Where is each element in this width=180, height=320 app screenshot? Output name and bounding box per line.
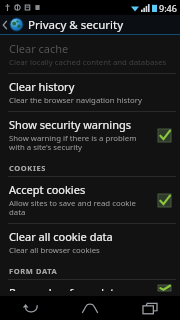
button[interactable]: Navigate up bbox=[0, 15, 180, 34]
staticText: Clear all cookie data bbox=[9, 229, 113, 244]
staticText: Clear the browser navigation history bbox=[9, 95, 142, 106]
staticText: COOKIES bbox=[9, 163, 46, 173]
button[interactable]: Remember form data checkbox bbox=[154, 285, 174, 291]
staticText: Show warning if there is a problem with … bbox=[9, 133, 148, 153]
button[interactable]: Back bbox=[0, 296, 60, 320]
staticText: Accept cookies bbox=[9, 182, 86, 197]
button[interactable]: Accept cookies bbox=[0, 177, 180, 223]
button[interactable]: Clear history bbox=[0, 74, 180, 111]
staticText: Show security warnings bbox=[9, 117, 131, 132]
button[interactable]: Clear all cookie data bbox=[0, 224, 180, 261]
staticText: 9:46 bbox=[159, 2, 177, 14]
staticText: Clear history bbox=[9, 79, 75, 94]
button[interactable]: Home bbox=[60, 296, 120, 320]
staticText: Clear all browser cookies bbox=[9, 245, 100, 256]
staticText: Allow sites to save and read cookie data bbox=[9, 198, 148, 218]
button[interactable]: Accept cookies checkbox bbox=[154, 190, 174, 210]
staticText: Remember form data bbox=[9, 285, 121, 291]
staticText: FORM DATA bbox=[9, 266, 58, 276]
button[interactable]: Recent apps bbox=[120, 296, 180, 320]
button[interactable]: Clear cache bbox=[0, 36, 180, 73]
button[interactable]: Show security warnings checkbox bbox=[154, 125, 174, 145]
button[interactable]: Remember form data bbox=[0, 280, 180, 296]
staticText: Clear cache bbox=[9, 41, 69, 56]
staticText: Privacy & security bbox=[28, 17, 124, 33]
button[interactable]: Show security warnings bbox=[0, 112, 180, 158]
staticText: Clear locally cached content and databas… bbox=[9, 57, 167, 68]
